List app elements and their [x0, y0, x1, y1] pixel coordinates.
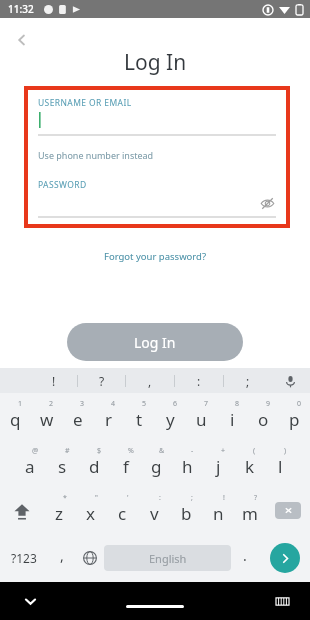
- button[interactable]: ): [265, 440, 296, 487]
- staticText: !: [52, 373, 56, 389]
- staticText: f: [123, 455, 129, 478]
- button[interactable]: ,: [48, 534, 76, 582]
- staticText: r: [105, 408, 113, 431]
- button[interactable]: !: [202, 487, 234, 534]
- button[interactable]: !: [30, 368, 77, 393]
- button[interactable]: :: [138, 487, 170, 534]
- staticText: :: [197, 373, 201, 389]
- staticText: e: [73, 408, 83, 431]
- button[interactable]: *: [43, 487, 74, 534]
- staticText: English: [149, 551, 187, 566]
- button[interactable]: 6: [155, 393, 186, 440]
- button[interactable]: Back: [8, 26, 36, 54]
- staticText: !: [223, 493, 225, 503]
- staticText: ?123: [11, 550, 37, 566]
- staticText: 5: [142, 399, 147, 409]
- staticText: +: [221, 446, 226, 456]
- button[interactable]: $: [78, 440, 110, 487]
- staticText: 1: [18, 399, 23, 409]
- button[interactable]: 8: [217, 393, 248, 440]
- button[interactable]: [38, 110, 276, 136]
- staticText: *: [63, 493, 67, 503]
- staticText: 7: [204, 399, 209, 409]
- staticText: 6: [173, 399, 178, 409]
- button[interactable]: +: [203, 440, 234, 487]
- button[interactable]: Enter: [259, 534, 310, 582]
- staticText: :: [159, 493, 161, 503]
- button[interactable]: &: [141, 440, 172, 487]
- button[interactable]: %: [110, 440, 141, 487]
- staticText: -: [191, 446, 194, 456]
- staticText: g: [151, 455, 162, 478]
- staticText: j: [216, 455, 221, 478]
- staticText: b: [181, 502, 192, 525]
- staticText: (: [253, 446, 256, 456]
- staticText: ): [284, 446, 287, 456]
- button[interactable]: ,: [126, 368, 174, 393]
- staticText: h: [182, 455, 193, 478]
- staticText: z: [55, 502, 63, 525]
- staticText: #: [65, 446, 70, 456]
- staticText: k: [245, 455, 255, 478]
- button[interactable]: Use phone number instead: [38, 149, 154, 161]
- button[interactable]: 7: [186, 393, 217, 440]
- button[interactable]: Voice input: [280, 371, 300, 391]
- button[interactable]: English: [104, 545, 231, 571]
- button[interactable]: ?: [78, 368, 125, 393]
- button[interactable]: Shift: [0, 487, 43, 534]
- staticText: Log In: [134, 333, 176, 352]
- button[interactable]: -: [172, 440, 203, 487]
- button[interactable]: ?: [234, 487, 266, 534]
- staticText: 8: [235, 399, 240, 409]
- staticText: ,: [60, 546, 64, 565]
- staticText: n: [213, 502, 224, 525]
- staticText: v: [150, 502, 159, 525]
- button[interactable]: 1: [0, 393, 31, 440]
- staticText: $: [97, 446, 102, 456]
- button[interactable]: 9: [248, 393, 279, 440]
- button[interactable]: 4: [93, 393, 124, 440]
- staticText: ;: [191, 493, 193, 503]
- staticText: @: [32, 446, 39, 456]
- staticText: y: [166, 408, 175, 431]
- button[interactable]: ;: [224, 368, 272, 393]
- staticText: x: [86, 502, 95, 525]
- staticText: 9: [266, 399, 271, 409]
- button[interactable]: 0: [279, 393, 310, 440]
- button[interactable]: 2: [31, 393, 62, 440]
- staticText: o: [258, 408, 269, 431]
- staticText: USERNAME OR EMAIL: [38, 97, 132, 109]
- staticText: Log In: [124, 48, 187, 77]
- staticText: ,: [148, 373, 152, 389]
- button[interactable]: Switch keyboard: [270, 589, 294, 613]
- staticText: &: [159, 446, 165, 456]
- button[interactable]: Home: [126, 605, 184, 608]
- staticText: ?: [254, 493, 258, 503]
- button[interactable]: ": [74, 487, 106, 534]
- staticText: q: [10, 408, 21, 431]
- button[interactable]: ': [106, 487, 138, 534]
- button[interactable]: .: [231, 534, 259, 582]
- staticText: ?: [99, 373, 105, 389]
- staticText: 2: [49, 399, 54, 409]
- button[interactable]: 3: [62, 393, 93, 440]
- button[interactable]: Show password: [256, 192, 278, 214]
- staticText: .: [243, 546, 247, 565]
- button[interactable]: (: [234, 440, 265, 487]
- staticText: 4: [111, 399, 116, 409]
- button[interactable]: Backspace: [266, 487, 310, 534]
- button[interactable]: Change language: [76, 534, 104, 582]
- button[interactable]: #: [46, 440, 78, 487]
- button[interactable]: Log In: [67, 323, 243, 361]
- button[interactable]: 5: [124, 393, 155, 440]
- button[interactable]: ?123: [0, 534, 48, 582]
- staticText: %: [128, 446, 134, 456]
- staticText: s: [58, 455, 67, 478]
- button[interactable]: Forgot your password?: [104, 250, 207, 263]
- button[interactable]: ;: [170, 487, 202, 534]
- staticText: u: [196, 408, 207, 431]
- button[interactable]: [38, 192, 276, 218]
- button[interactable]: :: [175, 368, 223, 393]
- button[interactable]: Hide keyboard: [18, 589, 42, 613]
- button[interactable]: @: [14, 440, 46, 487]
